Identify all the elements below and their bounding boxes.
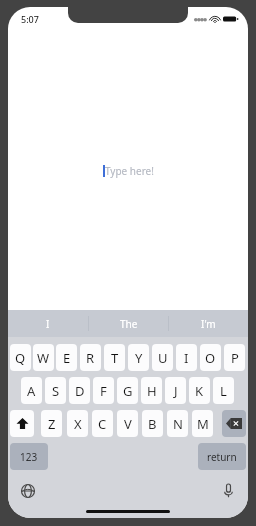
staticText: A <box>27 382 36 400</box>
button[interactable]: The <box>89 310 168 337</box>
staticText: P <box>231 349 239 367</box>
button[interactable]: E <box>56 344 77 371</box>
staticText: Z <box>48 415 56 433</box>
button[interactable]: Z <box>41 410 62 437</box>
staticText: The <box>120 317 138 331</box>
button[interactable]: 123 <box>10 443 48 470</box>
staticText: T <box>111 349 119 367</box>
button[interactable]: Q <box>10 344 31 371</box>
button[interactable]: J <box>165 377 186 404</box>
staticText: L <box>220 382 227 400</box>
staticText: S <box>52 382 60 400</box>
button[interactable]: I <box>8 310 88 337</box>
button[interactable]: A <box>21 377 42 404</box>
staticText: E <box>63 349 71 367</box>
button[interactable]: O <box>200 344 221 371</box>
button[interactable]: B <box>142 410 163 437</box>
staticText: D <box>75 382 85 400</box>
button[interactable]: C <box>92 410 113 437</box>
button[interactable]: P <box>224 344 245 371</box>
button[interactable]: I'm <box>169 310 248 337</box>
button[interactable]: L <box>213 377 234 404</box>
button[interactable]: R <box>80 344 101 371</box>
staticText: H <box>147 382 157 400</box>
button[interactable]: V <box>117 410 138 437</box>
staticText: I <box>184 349 189 367</box>
staticText: return <box>207 450 237 464</box>
staticText: Y <box>135 349 143 367</box>
staticText: F <box>100 382 107 400</box>
staticText: W <box>37 349 50 367</box>
button[interactable]: F <box>93 377 114 404</box>
staticText: Q <box>15 349 26 367</box>
button[interactable]: Dictate <box>218 481 238 501</box>
staticText: R <box>86 349 95 367</box>
button[interactable]: Y <box>128 344 149 371</box>
button[interactable]: K <box>189 377 210 404</box>
button[interactable]: Shift <box>10 410 34 437</box>
button[interactable]: Change keyboard <box>18 481 38 501</box>
button[interactable]: return <box>198 443 246 470</box>
staticText: M <box>197 415 209 433</box>
staticText: C <box>98 415 107 433</box>
staticText: J <box>174 382 178 400</box>
staticText: V <box>124 415 132 433</box>
button[interactable]: N <box>167 410 188 437</box>
staticText: I'm <box>201 317 216 331</box>
button[interactable]: U <box>152 344 173 371</box>
staticText: N <box>173 415 183 433</box>
staticText: X <box>74 415 82 433</box>
staticText: G <box>123 382 133 400</box>
staticText: I <box>46 317 50 331</box>
button[interactable]: S <box>45 377 66 404</box>
button[interactable]: D <box>69 377 90 404</box>
button[interactable]: T <box>104 344 125 371</box>
staticText: U <box>158 349 168 367</box>
button[interactable]: M <box>192 410 213 437</box>
staticText: Type here! <box>105 164 154 178</box>
button[interactable]: I <box>176 344 197 371</box>
button[interactable]: G <box>117 377 138 404</box>
button[interactable]: H <box>141 377 162 404</box>
button[interactable]: W <box>33 344 54 371</box>
button[interactable]: X <box>67 410 88 437</box>
staticText: 123 <box>20 450 38 464</box>
staticText: K <box>195 382 204 400</box>
staticText: B <box>148 415 157 433</box>
staticText: 5:07 <box>21 13 39 25</box>
staticText: O <box>205 349 216 367</box>
button[interactable]: Delete <box>222 410 246 437</box>
